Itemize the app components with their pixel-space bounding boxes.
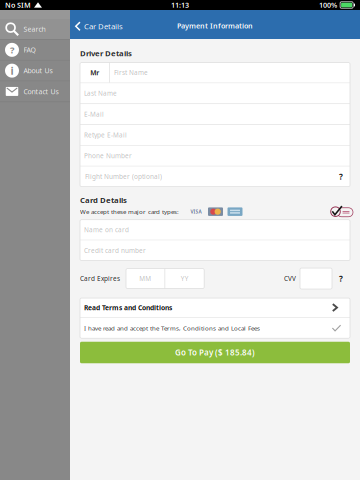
- staticText: Payment Information: [177, 21, 253, 30]
- staticText: Card Expires: [80, 274, 120, 283]
- button[interactable]: I have read and accept the Terms, Condit…: [80, 318, 350, 338]
- button[interactable]: ?: [336, 166, 346, 187]
- staticText: ?: [339, 273, 343, 284]
- staticText: Phone Number: [84, 151, 132, 160]
- staticText: VISA: [190, 208, 201, 215]
- staticText: Go To Pay ($ 185.84): [175, 347, 255, 358]
- staticText: No SIM: [5, 0, 31, 10]
- staticText: Search: [23, 24, 45, 34]
- staticText: E-Mail: [84, 110, 104, 118]
- staticText: About Us: [23, 66, 52, 75]
- staticText: Driver Details: [80, 48, 132, 58]
- staticText: Card Details: [80, 195, 127, 205]
- button[interactable]: Contact Us: [0, 81, 70, 101]
- button[interactable]: Car Details: [70, 12, 129, 36]
- staticText: 100%: [319, 0, 337, 10]
- button[interactable]: i: [0, 61, 70, 81]
- button[interactable]: Search: [0, 19, 70, 39]
- button[interactable]: Go To Pay ($ 185.84): [80, 342, 350, 363]
- staticText: FAQ: [23, 45, 35, 54]
- staticText: Contact Us: [23, 87, 58, 96]
- staticText: Flight Number (optional): [85, 172, 162, 181]
- button[interactable]: Mr: [80, 62, 109, 83]
- staticText: CVV: [284, 274, 296, 283]
- button[interactable]: ?: [0, 40, 70, 60]
- staticText: i: [10, 63, 13, 78]
- staticText: MM: [139, 274, 151, 283]
- staticText: 11:13: [171, 0, 189, 10]
- button[interactable]: ?: [332, 268, 350, 289]
- staticText: Read Terms and Conditions: [84, 303, 172, 312]
- staticText: ?: [10, 43, 14, 56]
- staticText: I have read and accept the Terms, Condit…: [84, 324, 260, 332]
- staticText: Credit card number: [84, 246, 146, 255]
- staticText: ?: [339, 171, 343, 182]
- staticText: Retype E-Mail: [84, 131, 127, 139]
- staticText: YY: [181, 274, 189, 283]
- staticText: Last Name: [84, 89, 117, 98]
- staticText: Name on card: [84, 225, 129, 234]
- staticText: We accept these major card types:: [80, 207, 179, 216]
- staticText: Car Details: [84, 21, 123, 31]
- staticText: First Name: [114, 68, 148, 77]
- button[interactable]: Read Terms and Conditions: [80, 298, 350, 317]
- staticText: Mr: [90, 68, 99, 77]
